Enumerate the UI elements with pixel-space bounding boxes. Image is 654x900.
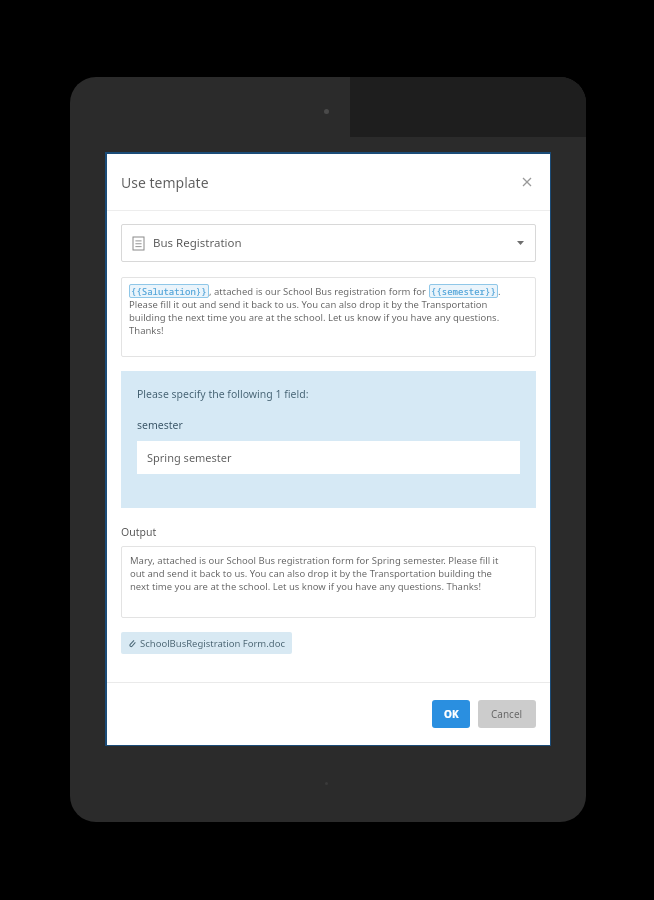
staticText: {{Salutation}} — [131, 285, 207, 297]
staticText: Use template — [121, 173, 209, 192]
staticText: building the next time you are at the sc… — [129, 311, 500, 324]
button[interactable]: Close — [516, 171, 538, 193]
staticText: out and send it back to us. You can also… — [130, 567, 492, 580]
staticText: Thanks! — [129, 324, 164, 337]
staticText: {{semester}} — [431, 285, 496, 297]
staticText: Output — [121, 525, 157, 539]
staticText: Please specify the following 1 field: — [137, 387, 309, 401]
button[interactable]: Cancel — [478, 700, 536, 728]
staticText: Cancel — [491, 707, 523, 721]
staticText: SchoolBusRegistration Form.doc — [140, 637, 285, 650]
button[interactable]: SchoolBusRegistration Form.doc — [121, 632, 292, 654]
staticText: Please fill it out and send it back to u… — [129, 298, 488, 311]
staticText: Bus Registration — [153, 235, 242, 251]
button[interactable]: Bus Registration — [121, 224, 536, 262]
staticText: next time you are at the school. Let us … — [130, 580, 481, 593]
staticText: OK — [444, 707, 459, 721]
button[interactable]: Spring semester — [137, 441, 520, 474]
staticText: . — [498, 285, 501, 298]
staticText: , attached is our School Bus registratio… — [209, 285, 429, 298]
staticText: Spring semester — [147, 450, 232, 465]
button[interactable]: OK — [432, 700, 470, 728]
staticText: semester — [137, 418, 183, 432]
staticText: Mary, attached is our School Bus registr… — [130, 554, 499, 567]
